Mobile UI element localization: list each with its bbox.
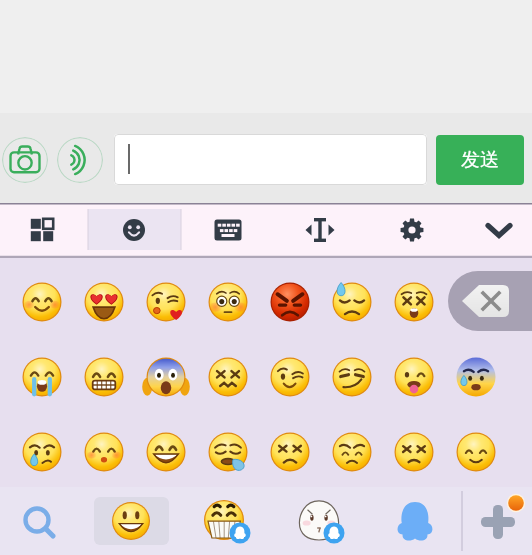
button[interactable] — [114, 134, 427, 185]
button[interactable]: Backspace — [448, 271, 532, 331]
button[interactable]: Collapse keyboard — [475, 210, 523, 250]
button[interactable]: 发送 — [436, 135, 524, 185]
button[interactable]: Camera — [2, 137, 48, 183]
button[interactable]: Settings — [388, 210, 436, 250]
button[interactable]: Voice input — [57, 137, 103, 183]
staticText: 发送 — [461, 148, 499, 172]
button[interactable]: Emoji — [110, 210, 158, 250]
button[interactable]: Keyboard — [204, 210, 252, 250]
button[interactable]: Layouts — [18, 210, 66, 250]
button[interactable]: Move cursor — [296, 210, 344, 250]
